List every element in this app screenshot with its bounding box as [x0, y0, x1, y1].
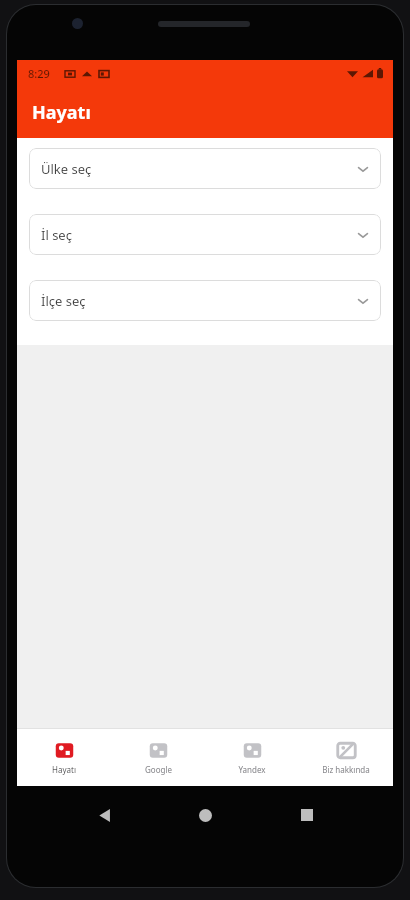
- staticText: Google: [145, 764, 172, 775]
- staticText: İl seç: [41, 226, 357, 244]
- staticText: Ülke seç: [41, 160, 357, 178]
- staticText: 8:29: [28, 66, 50, 81]
- button[interactable]: Hayatı: [17, 729, 111, 786]
- button[interactable]: Home: [190, 800, 220, 830]
- button[interactable]: İlçe seç: [29, 280, 381, 321]
- button[interactable]: Recent apps: [292, 800, 322, 830]
- staticText: Yandex: [238, 764, 266, 775]
- staticText: Hayatı: [32, 100, 91, 125]
- button[interactable]: Ülke seç: [29, 148, 381, 189]
- button[interactable]: Google: [111, 729, 205, 786]
- button[interactable]: Biz hakkında: [299, 729, 393, 786]
- button[interactable]: Back: [89, 800, 119, 830]
- staticText: Biz hakkında: [322, 764, 370, 775]
- button[interactable]: İl seç: [29, 214, 381, 255]
- staticText: Hayatı: [52, 764, 76, 775]
- staticText: İlçe seç: [41, 292, 357, 310]
- button[interactable]: Yandex: [205, 729, 299, 786]
